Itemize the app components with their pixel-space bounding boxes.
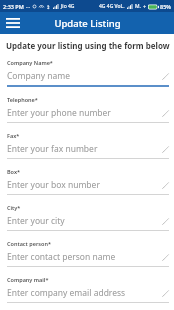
- staticText: …: [26, 3, 30, 10]
- staticText: 2:33 PM: [3, 3, 24, 10]
- staticText: Enter company email address: [7, 287, 162, 299]
- staticText: Box*: [7, 168, 20, 175]
- staticText: Telephone*: [7, 96, 38, 103]
- staticText: Contact person*: [7, 240, 51, 247]
- staticText: ↕: [46, 4, 51, 10]
- button[interactable]: Open navigation menu: [3, 13, 23, 33]
- staticText: Company mail*: [7, 276, 49, 283]
- staticText: 4G 4G VoL.: [99, 3, 125, 10]
- button[interactable]: Contact person*: [0, 240, 174, 267]
- button[interactable]: Telephone*: [0, 96, 174, 123]
- staticText: M.: [135, 3, 141, 10]
- staticText: +: [143, 3, 147, 10]
- button[interactable]: Company mail*: [0, 276, 174, 303]
- staticText: Fax*: [7, 132, 20, 139]
- staticText: Enter your city: [7, 215, 162, 227]
- staticText: Enter contact person name: [7, 251, 162, 263]
- button[interactable]: Box*: [0, 168, 174, 195]
- staticText: Update your listing using the form below: [6, 40, 170, 51]
- button[interactable]: Fax*: [0, 132, 174, 159]
- staticText: Jio 4G: [61, 3, 75, 10]
- staticText: 85%: [160, 3, 171, 10]
- button[interactable]: City*: [0, 204, 174, 231]
- staticText: Enter your box number: [7, 179, 162, 191]
- staticText: Company name: [7, 70, 162, 82]
- staticText: Company Name*: [7, 59, 53, 66]
- staticText: Enter your fax number: [7, 143, 162, 155]
- staticText: City*: [7, 204, 21, 211]
- staticText: Enter your phone number: [7, 107, 162, 119]
- staticText: Update Listing: [54, 17, 121, 30]
- button[interactable]: Company Name*: [0, 59, 174, 87]
